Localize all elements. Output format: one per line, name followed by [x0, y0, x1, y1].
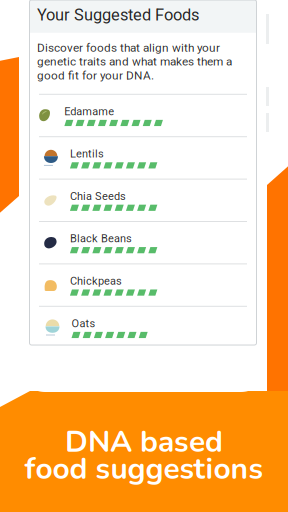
staticText: Edamame: [64, 105, 114, 118]
staticText: Chia Seeds: [70, 190, 126, 203]
button[interactable]: Oats: [29, 307, 256, 348]
button[interactable]: Lentils: [29, 137, 256, 179]
staticText: Oats: [71, 317, 95, 330]
button[interactable]: Chia Seeds: [29, 180, 256, 221]
staticText: Discover foods that align with your gene…: [37, 41, 232, 82]
staticText: Black Beans: [70, 232, 132, 245]
button[interactable]: Chickpeas: [29, 264, 256, 306]
staticText: Chickpeas: [70, 275, 122, 287]
button[interactable]: Black Beans: [29, 222, 256, 263]
staticText: DNA based: [65, 422, 223, 462]
staticText: Your Suggested Foods: [37, 5, 199, 24]
button[interactable]: Edamame: [29, 95, 256, 136]
staticText: food suggestions: [24, 449, 263, 489]
staticText: Lentils: [70, 147, 104, 160]
